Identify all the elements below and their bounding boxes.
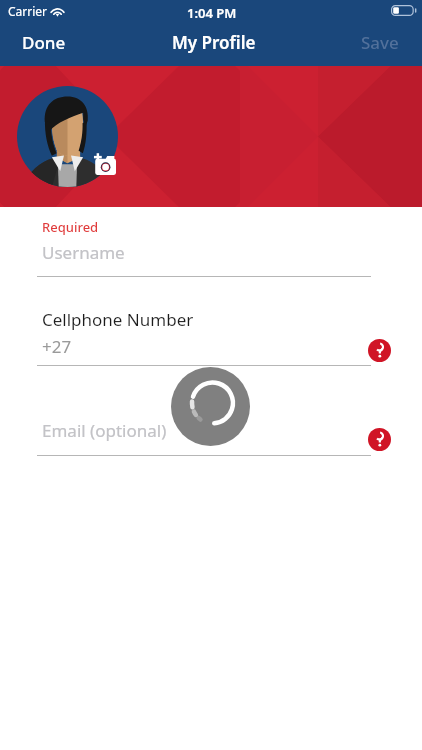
staticText: My Profile (172, 31, 256, 54)
staticText: Cellphone Number (42, 308, 194, 331)
button[interactable] (37, 308, 371, 366)
staticText: 1:04 PM (187, 4, 237, 22)
button[interactable]: Help (368, 428, 391, 451)
button[interactable]: Help (368, 339, 391, 362)
staticText: Save (361, 31, 399, 54)
staticText: Required (42, 218, 99, 236)
button[interactable]: Save (345, 26, 415, 66)
button[interactable]: Done (6, 26, 82, 66)
staticText: +27 (42, 335, 72, 358)
staticText: Email (optional) (42, 419, 167, 442)
staticText: Carrier (8, 3, 48, 19)
staticText: Username (42, 241, 125, 264)
button[interactable] (37, 218, 371, 277)
staticText: Done (22, 31, 66, 54)
button[interactable]: Change profile photo (17, 86, 118, 187)
button[interactable] (37, 419, 371, 456)
